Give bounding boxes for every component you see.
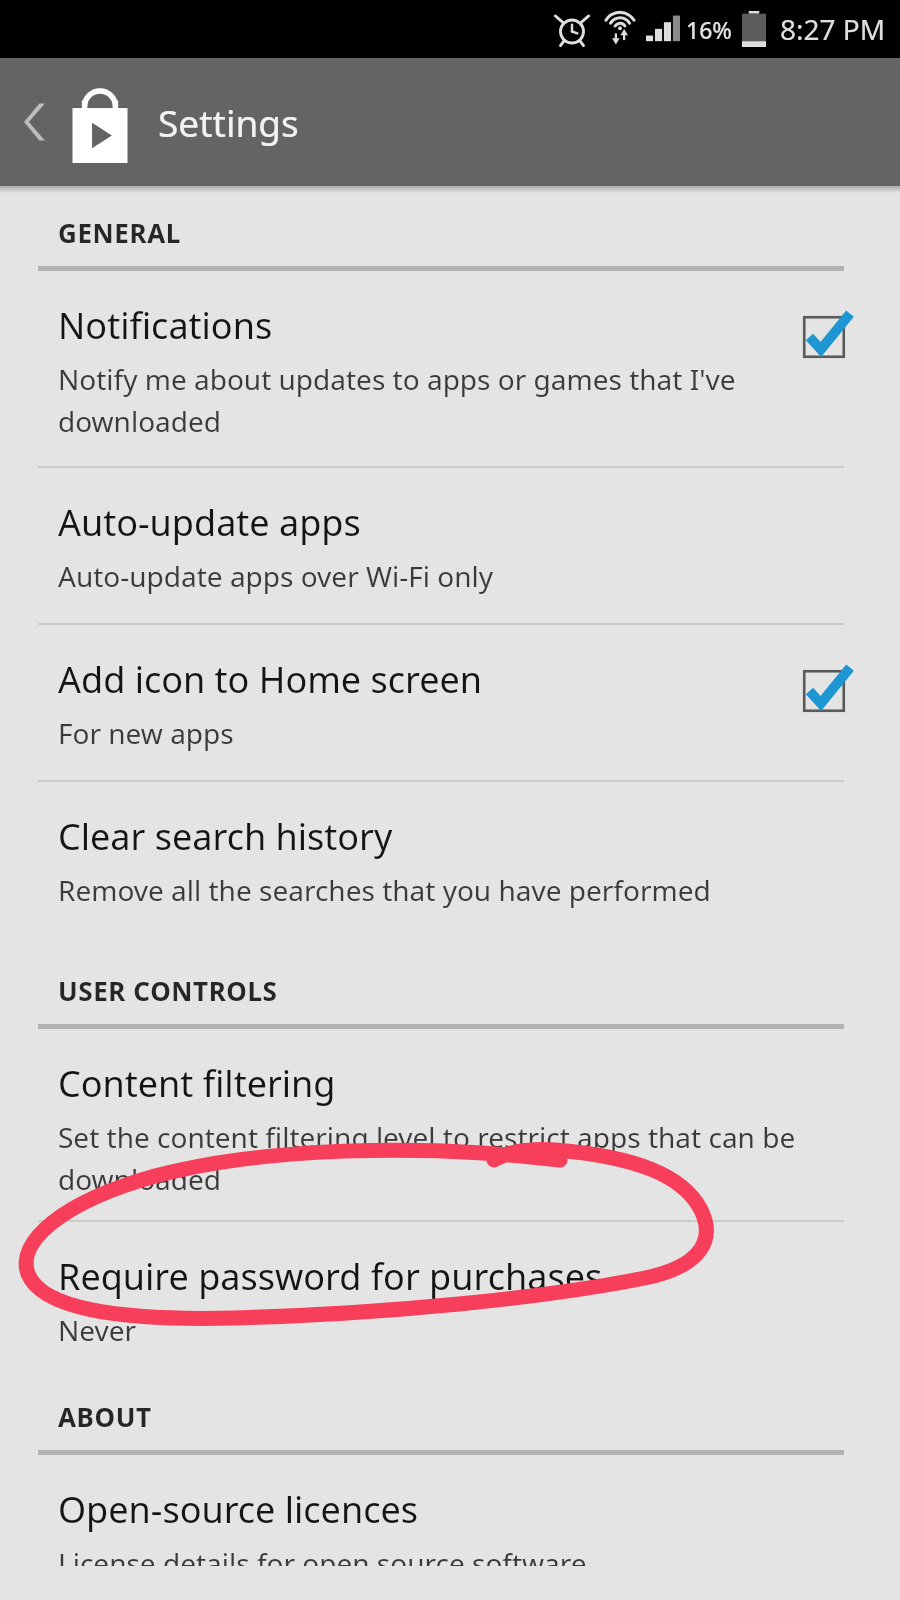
staticText: Open-source licences [58, 1485, 419, 1534]
staticText: USER CONTROLS [58, 973, 278, 1008]
staticText: Set the content filtering level to restr… [58, 1118, 860, 1198]
button[interactable]: Clear search history [0, 782, 900, 929]
button[interactable]: Add icon to Home screen [0, 625, 900, 780]
button[interactable]: Notifications [0, 271, 900, 466]
button[interactable]: Toggle Add icon to Home screen [788, 655, 860, 727]
staticText: ABOUT [58, 1399, 152, 1434]
button[interactable]: Toggle Notifications [788, 301, 860, 373]
button[interactable]: Content filtering [0, 1029, 900, 1220]
staticText: Clear search history [58, 812, 393, 861]
staticText: Auto-update apps [58, 498, 361, 547]
staticText: License details for open source software [58, 1544, 587, 1566]
staticText: Notifications [58, 301, 273, 350]
staticText: GENERAL [58, 215, 181, 250]
button[interactable]: Back [6, 93, 64, 151]
staticText: Content filtering [58, 1059, 336, 1108]
button[interactable]: Require password for purchases [0, 1222, 900, 1369]
staticText: Require password for purchases [58, 1252, 603, 1301]
staticText: For new apps [58, 714, 234, 752]
staticText: 16% [686, 14, 732, 45]
staticText: Add icon to Home screen [58, 655, 483, 704]
staticText: Notify me about updates to apps or games… [58, 360, 764, 440]
staticText: Settings [158, 97, 299, 147]
staticText: 8:27 PM [780, 10, 886, 48]
button[interactable]: Auto-update apps [0, 468, 900, 623]
staticText: Remove all the searches that you have pe… [58, 871, 711, 909]
button[interactable]: Open-source licences [0, 1455, 900, 1600]
staticText: Never [58, 1311, 137, 1349]
staticText: Auto-update apps over Wi-Fi only [58, 557, 494, 595]
